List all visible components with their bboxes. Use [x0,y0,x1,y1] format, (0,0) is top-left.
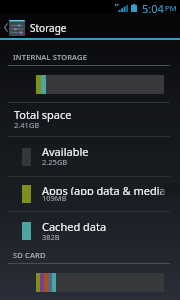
staticText: Storage [30,21,67,35]
button[interactable]: Available [0,137,180,176]
staticText: 2.41GB [14,120,40,130]
staticText: SD CARD [13,250,46,260]
staticText: Cached data [42,219,107,234]
button[interactable]: Apps (app data & media content) [0,177,180,211]
staticText: 2.25GB [42,157,68,167]
staticText: 382B [42,232,60,242]
button[interactable]: Navigate up [0,13,180,38]
staticText: INTERNAL STORAGE [13,52,87,62]
staticText: Apps (app data & media content) [42,183,180,195]
staticText: Total space [14,107,72,122]
staticText: 109MB [42,193,67,203]
staticText: PM [165,3,177,13]
staticText: Available [42,144,89,159]
button[interactable]: Total space [0,103,180,136]
staticText: 5:04 [142,1,164,14]
button[interactable]: Cached data [0,212,180,250]
